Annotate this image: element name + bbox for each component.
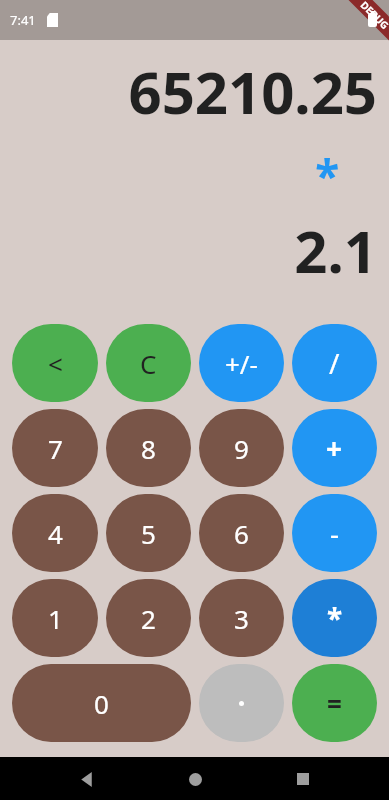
button[interactable]: 4	[12, 494, 98, 572]
button[interactable]: Recent apps	[285, 761, 321, 797]
staticText: 2.1	[12, 211, 377, 290]
staticText: 4	[48, 516, 63, 551]
staticText: 5	[141, 516, 156, 551]
staticText: 3	[234, 601, 249, 636]
button[interactable]: +/-	[199, 324, 284, 402]
staticText: 7	[48, 431, 63, 466]
button[interactable]: 7	[12, 409, 98, 487]
staticText: +/-	[225, 346, 258, 381]
button[interactable]	[199, 664, 284, 742]
staticText: =	[327, 686, 342, 721]
staticText: 6	[234, 516, 249, 551]
staticText: DEBUG	[358, 0, 389, 32]
staticText: 7:41	[10, 11, 36, 29]
button[interactable]: 5	[106, 494, 191, 572]
button[interactable]: +	[292, 409, 377, 487]
button[interactable]: 8	[106, 409, 191, 487]
staticText: 0	[94, 686, 109, 721]
staticText: +	[326, 429, 343, 467]
button[interactable]: 9	[199, 409, 284, 487]
staticText: <	[48, 346, 63, 381]
staticText: 2	[141, 601, 156, 636]
button[interactable]: <	[12, 324, 98, 402]
button[interactable]: =	[292, 664, 377, 742]
button[interactable]: C	[106, 324, 191, 402]
staticText: -	[330, 514, 340, 552]
button[interactable]: *	[292, 579, 377, 657]
button[interactable]: 6	[199, 494, 284, 572]
staticText: /	[329, 344, 340, 382]
button[interactable]: 0	[12, 664, 191, 742]
button[interactable]: 2	[106, 579, 191, 657]
staticText: 8	[141, 431, 156, 466]
staticText: C	[140, 346, 157, 381]
button[interactable]: Home	[177, 761, 213, 797]
staticText: 1	[48, 601, 63, 636]
staticText: 9	[234, 431, 249, 466]
button[interactable]: Back	[68, 761, 104, 797]
staticText: *	[12, 145, 339, 205]
button[interactable]: 3	[199, 579, 284, 657]
button[interactable]: /	[292, 324, 377, 402]
staticText: *	[327, 599, 343, 637]
button[interactable]: 1	[12, 579, 98, 657]
button[interactable]: -	[292, 494, 377, 572]
staticText: 65210.25	[12, 52, 377, 131]
